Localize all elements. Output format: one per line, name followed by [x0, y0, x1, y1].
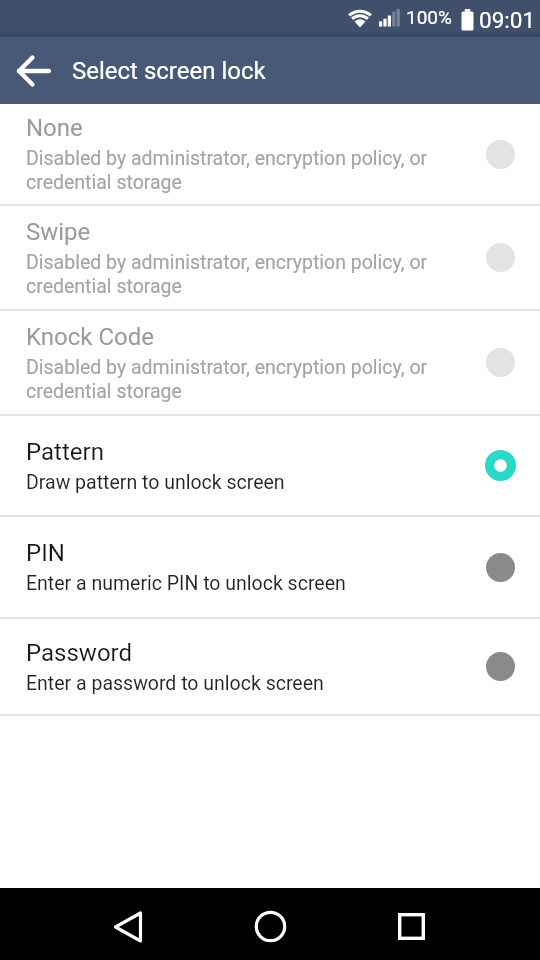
staticText: Disabled by administrator, encryption po… — [26, 356, 428, 403]
staticText: None — [26, 114, 83, 142]
button[interactable]: Pattern — [0, 416, 540, 515]
button[interactable] — [381, 894, 441, 954]
staticText: Draw pattern to unlock screen — [26, 471, 285, 494]
button[interactable]: Knock Code — [0, 311, 540, 414]
button[interactable] — [0, 37, 66, 104]
button[interactable]: Password — [0, 619, 540, 714]
button[interactable] — [98, 894, 158, 954]
staticText: Select screen lock — [72, 57, 266, 85]
button[interactable]: None — [0, 104, 540, 204]
staticText: Password — [26, 639, 133, 667]
button[interactable] — [240, 894, 300, 954]
staticText: Disabled by administrator, encryption po… — [26, 251, 428, 298]
staticText: Knock Code — [26, 323, 154, 351]
staticText: Pattern — [26, 438, 104, 466]
staticText: 09:01 — [479, 7, 536, 33]
staticText: Disabled by administrator, encryption po… — [26, 147, 428, 194]
staticText: Enter a numeric PIN to unlock screen — [26, 572, 346, 595]
staticText: 100% — [406, 6, 452, 28]
staticText: PIN — [26, 539, 65, 567]
staticText: Swipe — [26, 218, 91, 246]
button[interactable]: PIN — [0, 517, 540, 617]
staticText: Enter a password to unlock screen — [26, 672, 324, 695]
button[interactable]: Swipe — [0, 206, 540, 309]
